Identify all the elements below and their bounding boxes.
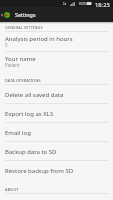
staticText: DATA OPERATIONS <box>5 78 41 83</box>
staticText: ABOUT <box>5 187 19 192</box>
button[interactable]: Backup data to SD <box>0 142 113 161</box>
staticText: Email log <box>5 129 31 137</box>
staticText: Patient <box>5 62 20 68</box>
button[interactable]: Restore backup from SD <box>0 161 113 180</box>
staticText: GENERAL SETTINGS <box>5 25 43 30</box>
staticText: Your name <box>5 55 36 63</box>
staticText: Backup data to SD <box>5 148 57 156</box>
staticText: 18:25 <box>95 1 110 8</box>
button[interactable]: Analysis period in hours <box>0 32 113 52</box>
button[interactable]: Export log as XLS <box>0 104 113 123</box>
staticText: Export log as XLS <box>5 110 54 118</box>
staticText: 00% <box>79 1 88 7</box>
button[interactable]: Back <box>0 7 4 22</box>
staticText: 5 <box>5 42 8 48</box>
staticText: Restore backup from SD <box>5 167 74 175</box>
button[interactable]: Your name <box>0 52 113 72</box>
button[interactable]: Delete all saved data <box>0 85 113 104</box>
staticText: Analysis period in hours <box>5 35 73 43</box>
staticText: Settings <box>15 11 36 18</box>
staticText: Delete all saved data <box>5 91 64 99</box>
button[interactable]: Email log <box>0 123 113 142</box>
